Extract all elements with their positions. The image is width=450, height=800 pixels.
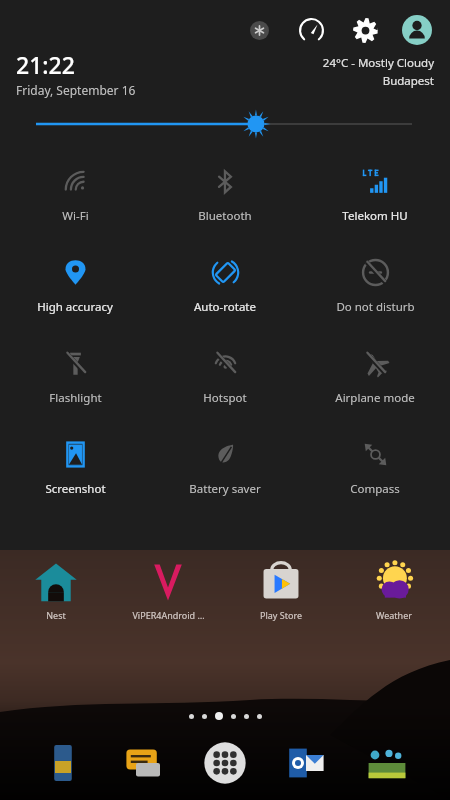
staticText: Weather (376, 609, 412, 621)
button[interactable]: Data usage (294, 13, 328, 47)
button[interactable]: 21:22 (16, 49, 322, 98)
button[interactable]: Bluetooth (150, 156, 300, 247)
button[interactable]: Screenshot (0, 429, 150, 520)
button[interactable]: gallery (363, 739, 411, 787)
staticText: Friday, September 16 (16, 82, 136, 98)
staticText: Compass (350, 481, 400, 497)
button[interactable]: Compass (300, 429, 450, 520)
button[interactable]: High accuracy (0, 247, 150, 338)
button[interactable]: User profile (400, 13, 434, 47)
staticText: Screenshot (45, 481, 106, 497)
button[interactable]: phone (39, 739, 87, 787)
staticText: Auto-rotate (194, 299, 256, 315)
button[interactable]: Battery saver (150, 429, 300, 520)
staticText: 24°C - Mostly Cloudy (322, 55, 434, 71)
button[interactable]: Nest (0, 559, 112, 621)
staticText: Nest (46, 609, 66, 621)
staticText: ViPER4Android … (132, 609, 205, 621)
staticText: Budapest (382, 73, 434, 89)
staticText: Wi-Fi (62, 208, 89, 224)
button[interactable]: Auto-rotate (150, 247, 300, 338)
button[interactable]: Settings (348, 13, 382, 47)
staticText: High accuracy (37, 299, 113, 315)
button[interactable]: outlook (282, 739, 330, 787)
button[interactable]: sms (120, 739, 168, 787)
button[interactable]: Flashlight (0, 338, 150, 429)
button[interactable]: Airplane mode (300, 338, 450, 429)
button[interactable]: 24°C - Mostly Cloudy (322, 49, 434, 89)
staticText: Hotspot (203, 390, 247, 406)
button[interactable]: Play Store (224, 559, 337, 621)
staticText: Do not disturb (336, 299, 415, 315)
staticText: Airplane mode (335, 390, 415, 406)
button[interactable]: Brightness (0, 98, 450, 150)
staticText: 21:22 (16, 49, 75, 80)
button[interactable]: Do not disturb (300, 247, 450, 338)
button[interactable]: Wi-Fi (0, 156, 150, 247)
button[interactable]: ViPER4Android … (112, 559, 224, 621)
button[interactable]: Weather (337, 559, 450, 621)
button[interactable]: Hotspot (150, 338, 300, 429)
staticText: Bluetooth (198, 208, 252, 224)
button[interactable]: Telekom HU (300, 156, 450, 247)
button[interactable]: drawer (201, 739, 249, 787)
staticText: Play Store (260, 609, 302, 621)
staticText: Flashlight (49, 390, 102, 406)
staticText: Battery saver (189, 481, 261, 497)
button[interactable]: Bluetooth status (244, 15, 274, 45)
staticText: Telekom HU (342, 208, 408, 224)
